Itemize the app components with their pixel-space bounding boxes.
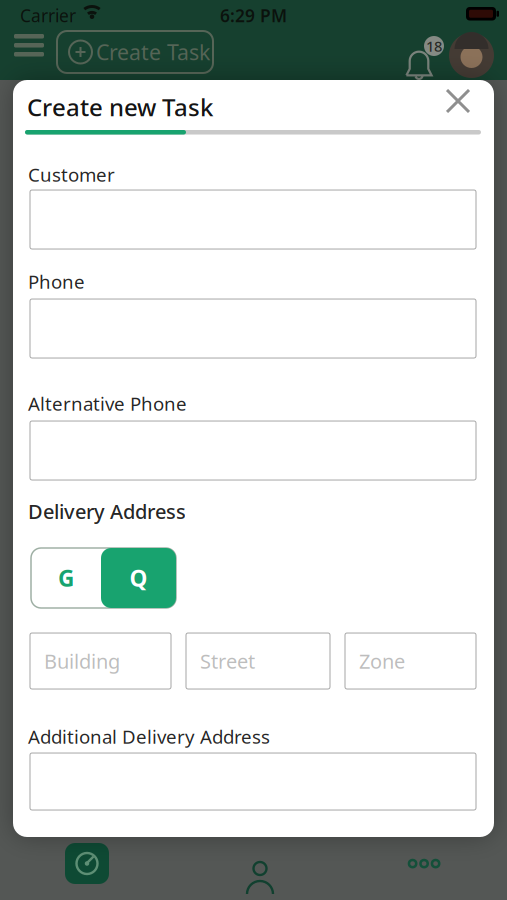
staticText: Create Task [96,38,210,66]
staticText: Delivery Address [28,498,186,525]
button[interactable]: Building [30,633,171,689]
staticText: 18 [426,36,442,56]
staticText: Create new Task [27,91,213,123]
button[interactable]: Address type Q [101,548,176,608]
staticText: Alternative Phone [28,391,187,416]
staticText: Customer [28,162,115,187]
button[interactable]: Profile [449,33,494,78]
button[interactable]: More [409,860,439,867]
staticText: G [58,563,74,593]
button[interactable]: Street [186,633,330,689]
staticText: 6:29 PM [220,4,287,27]
button[interactable]: Create Task [57,31,213,73]
button[interactable]: Text field [30,299,476,358]
staticText: Q [129,563,147,593]
staticText: Carrier [20,4,76,27]
button[interactable]: Menu [14,34,44,56]
staticText: Building [44,648,120,674]
button[interactable]: Notifications [393,26,441,80]
button[interactable]: Dashboard [65,843,109,884]
button[interactable]: Zone [345,633,476,689]
staticText: Phone [28,269,85,294]
button[interactable]: Text field [30,753,476,810]
button[interactable]: Address type G [31,548,101,608]
staticText: Zone [359,648,405,674]
button[interactable]: Account [238,843,273,884]
button[interactable]: Close [443,86,473,116]
button[interactable]: Text field [30,190,476,249]
staticText: Additional Delivery Address [28,724,270,749]
button[interactable]: Text field [30,421,476,480]
staticText: Street [200,648,255,674]
